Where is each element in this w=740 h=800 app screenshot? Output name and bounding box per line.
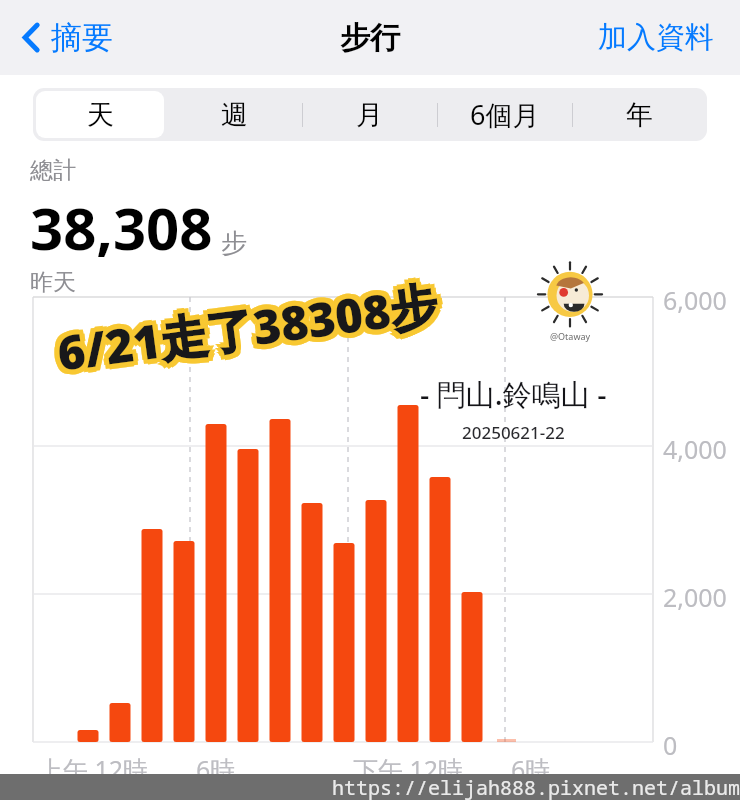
- staticText: 6/21走了38308步: [57, 273, 445, 386]
- button[interactable]: 年: [572, 88, 707, 141]
- staticText: 0: [663, 728, 678, 762]
- staticText: 總計: [30, 156, 76, 185]
- button[interactable]: 週: [167, 88, 302, 141]
- button[interactable]: 摘要: [16, 10, 119, 65]
- staticText: 下午 12時: [353, 752, 464, 786]
- staticText: 6/21走了38308步: [48, 272, 437, 385]
- staticText: 20250621-22: [462, 421, 565, 444]
- staticText: 6/21走了38308步: [50, 270, 438, 383]
- staticText: 昨天: [30, 268, 76, 297]
- staticText: 6/21走了38308步: [53, 271, 442, 385]
- button[interactable]: 6個月: [437, 88, 572, 141]
- button[interactable]: 天: [33, 88, 167, 141]
- staticText: 6/21走了38308步: [52, 274, 440, 388]
- staticText: 38,308: [30, 188, 213, 267]
- staticText: 上午 12時: [38, 752, 149, 786]
- staticText: 6時: [196, 752, 236, 786]
- button[interactable]: 月: [302, 88, 437, 141]
- staticText: 6/21走了38308步: [58, 271, 446, 384]
- staticText: 週: [221, 98, 248, 132]
- staticText: 步行: [340, 19, 400, 57]
- staticText: 摘要: [51, 18, 113, 57]
- staticText: 天: [87, 98, 114, 132]
- staticText: 6/21走了38308步: [53, 266, 441, 380]
- staticText: @Otaway: [550, 330, 591, 342]
- staticText: 加入資料: [598, 19, 714, 56]
- staticText: 步: [221, 227, 247, 260]
- staticText: 4,000: [663, 432, 727, 466]
- staticText: - 閂山.鈴鳴山 -: [420, 374, 607, 414]
- staticText: 6/21走了38308步: [55, 268, 443, 381]
- staticText: 6,000: [663, 283, 727, 317]
- staticText: 2,000: [663, 580, 727, 614]
- staticText: 6個月: [470, 96, 540, 133]
- staticText: https://elijah888.pixnet.net/album: [332, 774, 740, 800]
- staticText: 年: [626, 98, 653, 132]
- button[interactable]: 加入資料: [592, 11, 720, 64]
- staticText: 6/21走了38308步: [49, 268, 437, 381]
- staticText: 月: [356, 98, 383, 132]
- staticText: 6時: [511, 752, 551, 786]
- staticText: 6/21走了38308步: [57, 267, 445, 380]
- staticText: 6/21走了38308步: [54, 276, 442, 390]
- staticText: 6/21走了38308步: [50, 276, 438, 389]
- staticText: 6/21走了38308步: [58, 275, 446, 388]
